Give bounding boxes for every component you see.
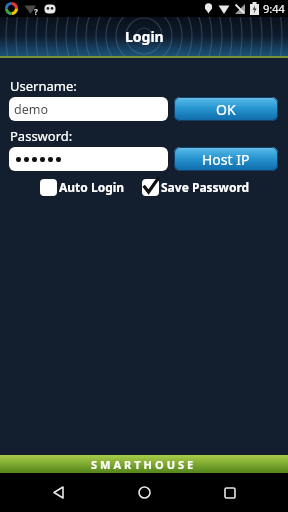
button[interactable]: Auto Login bbox=[39, 178, 125, 196]
staticText: Save Password bbox=[161, 179, 250, 195]
staticText: 9:44 bbox=[263, 1, 285, 16]
button[interactable]: demo bbox=[9, 97, 168, 121]
staticText: OK bbox=[216, 100, 236, 119]
staticText: SMARTHOUSE bbox=[91, 457, 197, 472]
staticText: ? bbox=[34, 6, 38, 17]
button[interactable]: OK bbox=[174, 97, 278, 121]
staticText: Username: bbox=[10, 77, 77, 95]
staticText: Host IP bbox=[202, 150, 250, 169]
staticText: demo bbox=[14, 101, 48, 118]
button[interactable] bbox=[124, 473, 164, 512]
button[interactable]: Host IP bbox=[174, 147, 278, 171]
button[interactable] bbox=[38, 473, 78, 512]
staticText: Password: bbox=[10, 127, 73, 145]
button[interactable] bbox=[9, 147, 168, 171]
button[interactable] bbox=[210, 473, 250, 512]
button[interactable]: Save Password bbox=[141, 178, 250, 196]
staticText: Login bbox=[125, 27, 164, 46]
staticText: Auto Login bbox=[59, 179, 125, 195]
